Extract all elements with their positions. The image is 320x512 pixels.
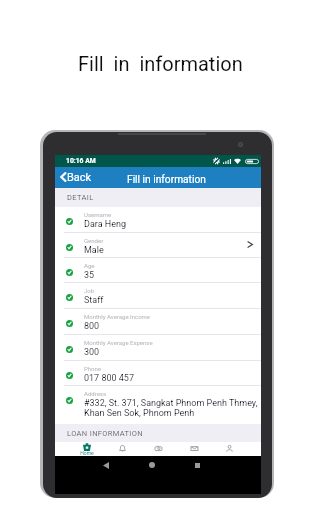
button[interactable]: Monthly Average Income xyxy=(55,309,261,335)
staticText: Staff xyxy=(84,295,290,306)
staticText: 10:16 AM xyxy=(66,157,96,165)
staticText: Fill in information xyxy=(127,174,206,186)
staticText: Monthly Average Income xyxy=(84,313,151,320)
button[interactable]: Notifications xyxy=(106,442,138,456)
staticText: Monthly Average Expense xyxy=(84,339,153,346)
button[interactable]: Recents xyxy=(191,459,203,471)
staticText: Age xyxy=(84,262,95,269)
staticText: Gender xyxy=(84,237,104,244)
staticText: Phone xyxy=(84,365,102,372)
staticText: 017 800 457 xyxy=(84,373,290,384)
button[interactable]: Messages xyxy=(178,442,210,456)
staticText: Fill in information xyxy=(78,52,243,75)
staticText: LOAN INFORMATION xyxy=(67,429,143,438)
staticText: Male xyxy=(84,245,290,256)
button[interactable]: Back xyxy=(100,459,112,471)
staticText: 800 xyxy=(84,321,290,332)
staticText: Address xyxy=(84,390,107,397)
button[interactable]: Address xyxy=(55,386,261,425)
button[interactable]: Profile xyxy=(213,442,245,456)
button[interactable]: Gender xyxy=(55,233,261,258)
button[interactable]: Age xyxy=(55,258,261,283)
button[interactable]: Monthly Average Expense xyxy=(55,335,261,361)
button[interactable]: Home xyxy=(71,442,103,456)
button[interactable]: Username xyxy=(55,207,261,233)
staticText: #332, St. 371, Sangkat Phnom Penh Thmey,… xyxy=(84,398,290,418)
staticText: Back xyxy=(67,171,92,184)
staticText: 300 xyxy=(84,347,290,358)
staticText: Job xyxy=(84,287,95,294)
button[interactable]: Home xyxy=(146,459,158,471)
staticText: Username xyxy=(84,211,112,218)
staticText: 35 xyxy=(84,270,290,281)
button[interactable]: Camera xyxy=(142,442,174,456)
button[interactable]: Back xyxy=(57,167,97,188)
staticText: Dara Heng xyxy=(84,219,290,230)
staticText: Home xyxy=(80,450,94,456)
button[interactable]: Phone xyxy=(55,361,261,386)
staticText: DETAIL xyxy=(67,193,94,202)
button[interactable]: Job xyxy=(55,283,261,309)
